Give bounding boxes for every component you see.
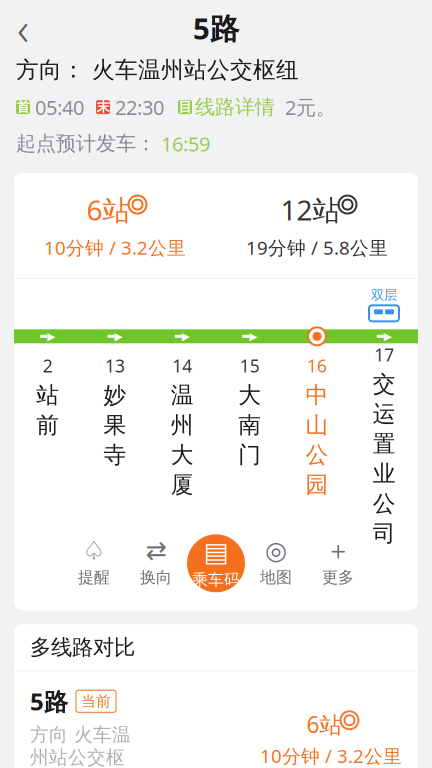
button[interactable]: ▤ bbox=[187, 534, 245, 592]
staticText: ◎ bbox=[265, 536, 287, 565]
staticText: 温 bbox=[171, 381, 194, 409]
staticText: 目 bbox=[178, 99, 191, 115]
staticText: 大 bbox=[171, 441, 194, 469]
staticText: 15 bbox=[240, 354, 260, 377]
button[interactable]: ◎ bbox=[245, 537, 307, 589]
staticText: 方向 火车温州站公交枢纽 bbox=[30, 723, 131, 768]
staticText: 末 bbox=[96, 99, 109, 115]
staticText: 南 bbox=[238, 411, 261, 439]
staticText: 乘车码 bbox=[192, 570, 240, 590]
staticText: 大 bbox=[238, 381, 261, 409]
staticText: ▶ bbox=[47, 330, 55, 342]
staticText: 13 bbox=[105, 354, 125, 377]
staticText: 门 bbox=[238, 441, 261, 469]
staticText: 线路详情 bbox=[195, 95, 275, 119]
staticText: 置 bbox=[373, 430, 396, 458]
staticText: 10分钟 / 3.2公里 bbox=[260, 743, 402, 768]
staticText: ＋ bbox=[325, 535, 350, 566]
staticText: 园 bbox=[305, 471, 328, 499]
staticText: ‹ bbox=[17, 0, 29, 58]
staticText: 提醒 bbox=[78, 567, 110, 587]
staticText: ▶ bbox=[114, 330, 122, 342]
staticText: 17 bbox=[374, 343, 394, 366]
staticText: 前 bbox=[36, 411, 59, 439]
button[interactable]: 目 bbox=[164, 95, 275, 119]
button[interactable]: Back bbox=[0, 5, 46, 51]
staticText: 当前 bbox=[81, 692, 111, 710]
staticText: ▤ bbox=[203, 537, 228, 567]
staticText: 果 bbox=[103, 411, 126, 439]
staticText: 5路 bbox=[30, 685, 68, 717]
staticText: 5路 bbox=[193, 8, 239, 47]
staticText: 交 bbox=[373, 370, 396, 398]
button[interactable]: ＋ bbox=[307, 537, 369, 589]
staticText: 12站 bbox=[280, 191, 340, 228]
staticText: 中 bbox=[305, 381, 328, 409]
staticText: 2元。 bbox=[275, 94, 336, 120]
staticText: 16:59 bbox=[156, 130, 210, 157]
staticText: 司 bbox=[373, 519, 396, 547]
staticText: 业 bbox=[373, 460, 396, 488]
staticText: 10分钟 / 3.2公里 bbox=[44, 235, 186, 260]
staticText: 05:40 bbox=[30, 94, 84, 120]
staticText: 公 bbox=[373, 490, 396, 517]
staticText: 16 bbox=[307, 354, 327, 377]
staticText: ▶ bbox=[182, 330, 190, 342]
staticText: 14 bbox=[172, 354, 192, 377]
staticText: 地图 bbox=[260, 567, 292, 587]
button[interactable]: ♤ bbox=[63, 537, 125, 589]
staticText: 换向 bbox=[140, 567, 172, 587]
staticText: 站 bbox=[36, 381, 59, 409]
staticText: 6站 bbox=[306, 709, 342, 739]
staticText: 寺 bbox=[103, 441, 126, 469]
staticText: 多线路对比 bbox=[30, 634, 135, 660]
staticText: 公 bbox=[305, 441, 328, 469]
staticText: 双层 bbox=[371, 287, 397, 303]
button[interactable]: 5路 bbox=[14, 671, 418, 768]
staticText: 厦 bbox=[171, 471, 194, 499]
staticText: ▶ bbox=[249, 330, 257, 342]
staticText: 运 bbox=[373, 400, 396, 428]
staticText: 22:30 bbox=[110, 94, 164, 120]
staticText: ♤ bbox=[82, 536, 105, 565]
staticText: 山 bbox=[305, 411, 328, 439]
staticText: 19分钟 / 5.8公里 bbox=[246, 235, 388, 260]
staticText: 6站 bbox=[86, 191, 130, 228]
staticText: ▶ bbox=[384, 330, 392, 342]
staticText: 更多 bbox=[322, 567, 354, 587]
staticText: 妙 bbox=[103, 381, 126, 409]
staticText: 州 bbox=[171, 411, 194, 439]
staticText: 方向： bbox=[16, 56, 85, 84]
staticText: 火车温州站公交枢纽 bbox=[85, 56, 299, 84]
staticText: 起点预计发车： bbox=[16, 131, 156, 156]
staticText: 2 bbox=[43, 354, 53, 377]
staticText: ⇄ bbox=[145, 536, 166, 565]
staticText: 首 bbox=[16, 99, 29, 115]
button[interactable]: ⇄ bbox=[125, 537, 187, 589]
